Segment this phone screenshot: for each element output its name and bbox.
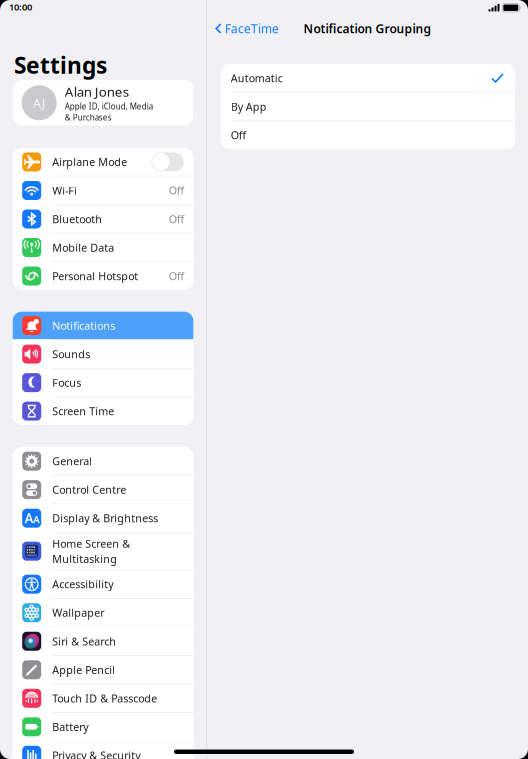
button[interactable]: Airplane Mode — [13, 148, 193, 176]
staticText: Wi-Fi — [52, 183, 77, 198]
button[interactable]: Focus — [13, 369, 193, 396]
staticText: Off — [231, 128, 246, 142]
button[interactable]: General — [13, 447, 193, 475]
staticText: Bluetooth — [52, 212, 102, 226]
button[interactable]: Battery — [13, 713, 193, 741]
staticText: Mobile Data — [52, 240, 114, 255]
staticText: Airplane Mode — [52, 155, 127, 169]
staticText: Privacy & Security — [52, 748, 140, 759]
staticText: Off — [169, 212, 184, 226]
staticText: Apple ID, iCloud, Media — [65, 101, 153, 112]
button[interactable]: Wallpaper — [13, 599, 193, 627]
staticText: Siri & Search — [52, 634, 116, 648]
staticText: General — [52, 454, 92, 468]
button[interactable]: Sounds — [13, 340, 193, 368]
button[interactable]: FaceTime — [207, 15, 285, 41]
staticText: Touch ID & Passcode — [52, 691, 157, 705]
staticText: Automatic — [231, 71, 283, 85]
button[interactable]: Privacy & Security — [13, 741, 193, 759]
staticText: Settings — [14, 50, 107, 80]
button[interactable]: Home Screen & — [13, 533, 193, 569]
staticText: Focus — [52, 375, 81, 390]
button[interactable]: Touch ID & Passcode — [13, 684, 193, 712]
button[interactable]: Screen Time — [13, 397, 193, 425]
button[interactable]: Automatic — [221, 64, 515, 92]
button[interactable]: Notifications — [13, 312, 193, 339]
button[interactable]: AJ — [13, 80, 193, 125]
staticText: Battery — [52, 720, 88, 734]
staticText: Display & Brightness — [52, 511, 158, 525]
button[interactable]: Wi-Fi — [13, 177, 193, 204]
staticText: By App — [231, 99, 267, 114]
button[interactable]: Apple Pencil — [13, 656, 193, 684]
staticText: Off — [169, 269, 184, 283]
staticText: & Purchases — [65, 112, 112, 123]
button[interactable]: Bluetooth — [13, 205, 193, 233]
button[interactable]: Siri & Search — [13, 627, 193, 655]
button[interactable]: Accessibility — [13, 570, 193, 598]
staticText: Apple Pencil — [52, 663, 115, 677]
button[interactable]: By App — [221, 93, 515, 120]
button[interactable]: Display & Brightness — [13, 504, 193, 532]
button[interactable]: Personal Hotspot — [13, 262, 193, 290]
staticText: Alan Jones — [65, 83, 129, 100]
staticText: Notification Grouping — [303, 20, 431, 36]
staticText: Sounds — [52, 347, 90, 361]
staticText: FaceTime — [225, 20, 279, 36]
button[interactable]: Control Centre — [13, 476, 193, 503]
staticText: Control Centre — [52, 483, 126, 497]
staticText: Screen Time — [52, 404, 114, 418]
button[interactable]: Mobile Data — [13, 234, 193, 261]
staticText: AJ — [33, 94, 46, 112]
button[interactable]: Off — [221, 121, 515, 149]
staticText: Wallpaper — [52, 606, 104, 620]
staticText: 10:00 — [9, 1, 32, 13]
staticText: Notifications — [52, 318, 115, 333]
staticText: Accessibility — [52, 577, 113, 591]
staticText: Personal Hotspot — [52, 269, 138, 283]
staticText: Multitasking — [52, 552, 117, 566]
staticText: Off — [169, 183, 184, 198]
staticText: Home Screen & — [52, 536, 130, 551]
